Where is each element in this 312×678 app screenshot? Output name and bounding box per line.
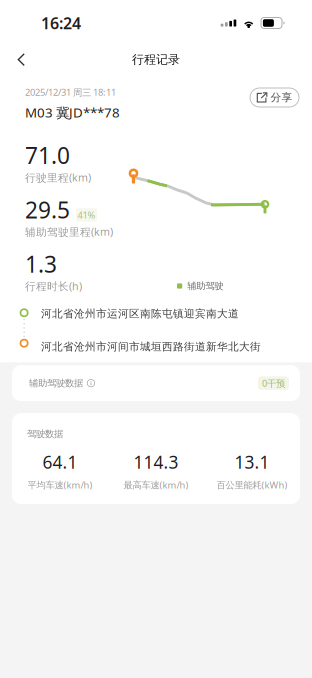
staticText: 41% — [77, 209, 95, 221]
staticText: 行程时长(h) — [25, 279, 82, 293]
staticText: 行驶里程(km) — [25, 170, 91, 185]
staticText: 2025/12/31 周三 18:11 — [25, 86, 116, 98]
staticText: 平均车速(km/h) — [27, 479, 92, 491]
staticText: 百公里能耗(kWh) — [216, 479, 287, 491]
staticText: 辅助驾驶数据 — [29, 377, 83, 389]
staticText: 13.1 — [234, 451, 269, 474]
staticText: 辅助驾驶里程(km) — [25, 225, 113, 239]
staticText: 114.3 — [133, 451, 178, 474]
staticText: 最高车速(km/h) — [123, 479, 188, 491]
button[interactable]: 返回 — [8, 46, 35, 73]
staticText: 分享 — [270, 91, 292, 104]
staticText: 河北省沧州市运河区南陈屯镇迎宾南大道 — [41, 307, 239, 320]
staticText: 行程记录 — [132, 52, 180, 67]
staticText: 71.0 — [25, 140, 70, 170]
button[interactable]: 分享 — [250, 88, 299, 107]
staticText: 29.5 — [25, 194, 70, 225]
staticText: 河北省沧州市河间市城垣西路街道新华北大街 — [41, 340, 261, 353]
staticText: 驾驶数据 — [27, 428, 63, 440]
staticText: 16:24 — [41, 12, 81, 34]
staticText: 0干预 — [262, 377, 285, 389]
staticText: 辅助驾驶 — [187, 280, 223, 292]
staticText: M03 冀JD***78 — [25, 103, 120, 121]
staticText: 1.3 — [25, 249, 57, 279]
staticText: 64.1 — [42, 451, 77, 474]
